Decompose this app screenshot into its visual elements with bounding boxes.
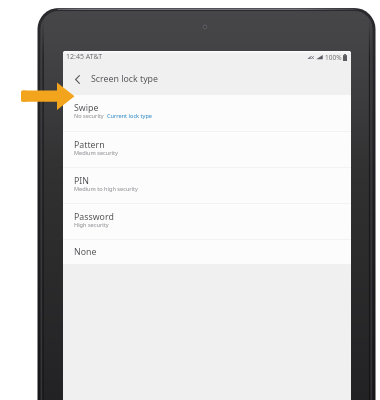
staticText: Current lock type bbox=[107, 112, 153, 120]
staticText: No security bbox=[74, 112, 104, 120]
staticText: Medium to high security bbox=[74, 185, 138, 193]
staticText: None bbox=[74, 246, 97, 258]
staticText: Screen lock type bbox=[91, 73, 158, 85]
staticText: 100% bbox=[325, 53, 342, 62]
staticText: Password bbox=[74, 211, 114, 223]
button[interactable]: None bbox=[63, 240, 351, 264]
staticText: Medium security bbox=[74, 149, 118, 157]
staticText: High security bbox=[74, 221, 109, 229]
staticText: Pattern bbox=[74, 139, 105, 151]
staticText: 12:45 AT&T bbox=[66, 52, 103, 62]
button[interactable]: Navigate up bbox=[63, 63, 91, 95]
button[interactable]: Swipe bbox=[63, 95, 351, 131]
button[interactable]: Password bbox=[63, 204, 351, 239]
staticText: Swipe bbox=[74, 102, 99, 114]
button[interactable]: PIN bbox=[63, 168, 351, 203]
button[interactable]: Pattern bbox=[63, 132, 351, 167]
staticText: PIN bbox=[74, 175, 89, 187]
